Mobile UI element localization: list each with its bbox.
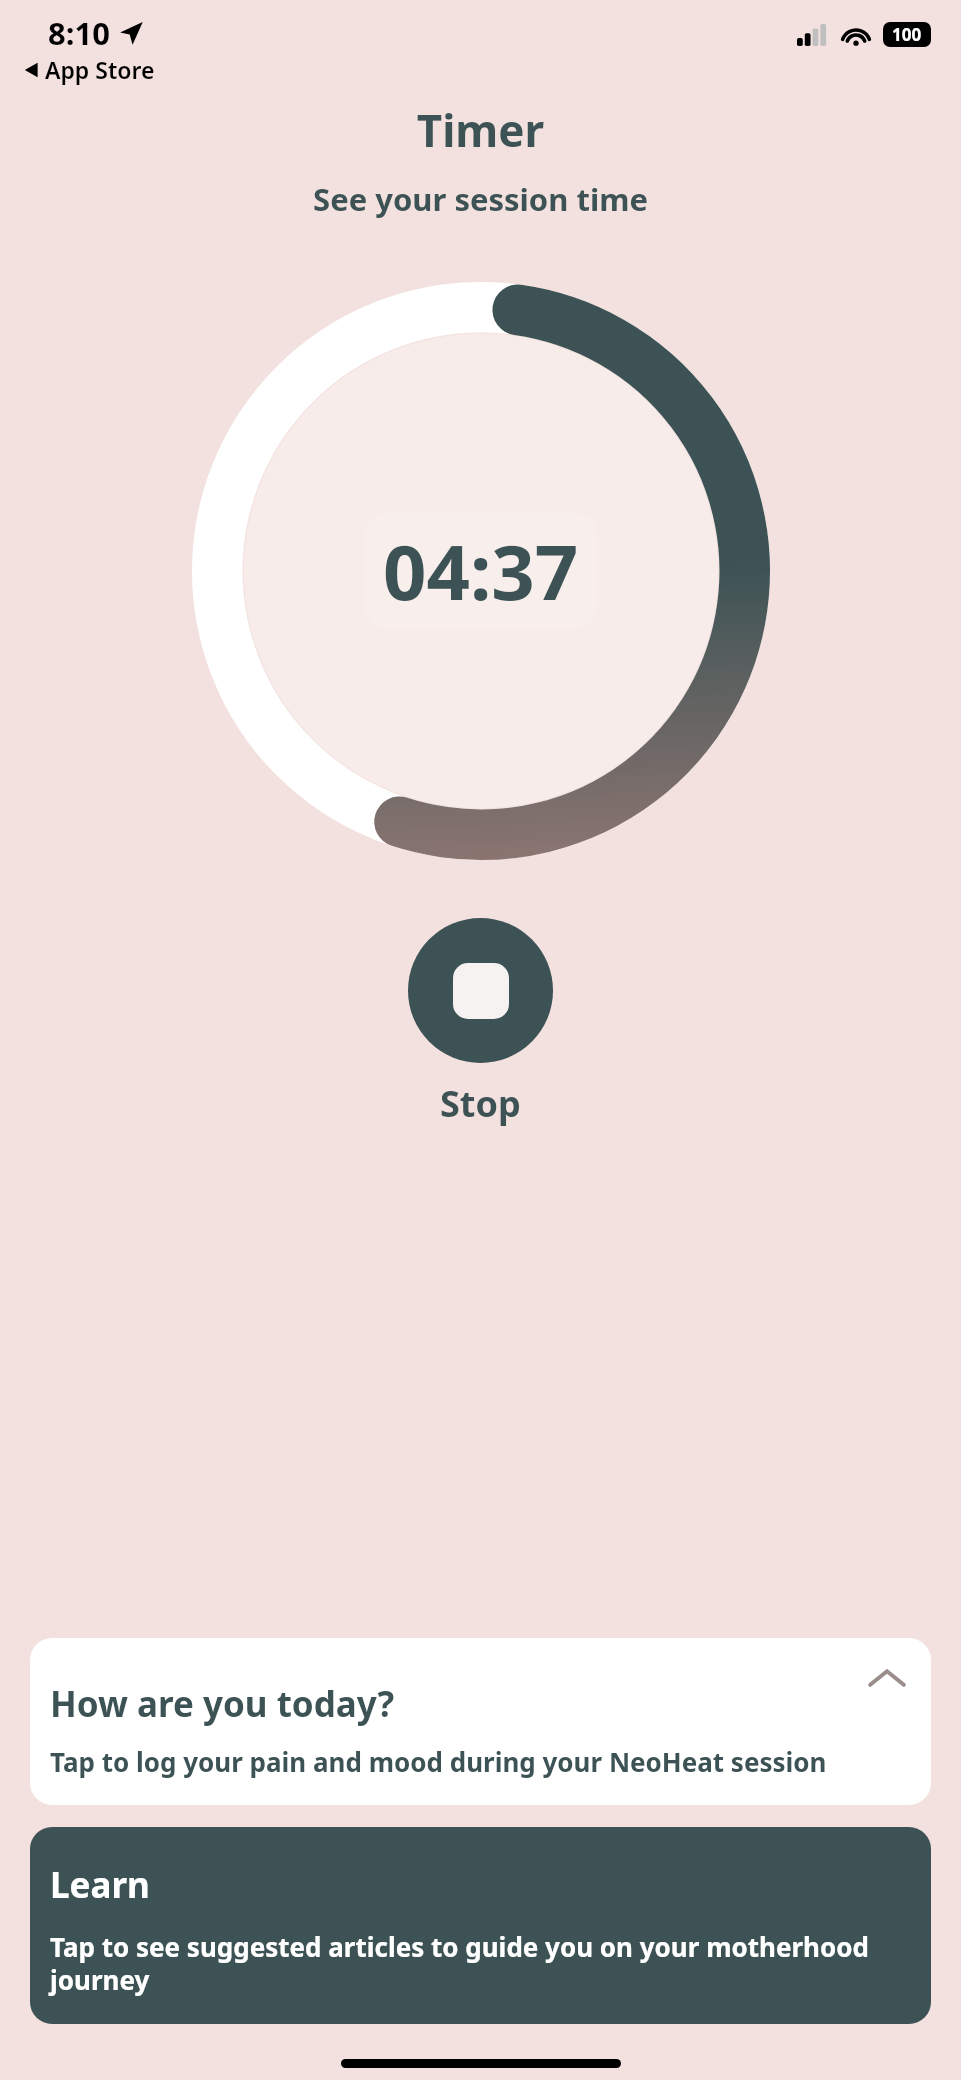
button[interactable]: Stop	[408, 918, 553, 1063]
staticText: Tap to log your pain and mood during you…	[50, 1744, 827, 1779]
staticText: How are you today?	[50, 1680, 395, 1728]
staticText: See your session time	[0, 178, 961, 220]
staticText: 100	[892, 23, 922, 46]
staticText: 8:10	[48, 12, 110, 54]
button[interactable]: Learn	[30, 1827, 931, 2024]
button[interactable]: How are you today?	[30, 1638, 931, 1805]
staticText: 04:37	[383, 519, 579, 623]
staticText: Tap to see suggested articles to guide y…	[50, 1929, 911, 1998]
button[interactable]: App Store	[20, 52, 159, 87]
staticText: Timer	[0, 100, 961, 160]
other: Collapse	[867, 1660, 907, 1700]
staticText: Stop	[440, 1079, 521, 1128]
staticText: App Store	[45, 54, 155, 85]
staticText: Learn	[50, 1861, 150, 1909]
